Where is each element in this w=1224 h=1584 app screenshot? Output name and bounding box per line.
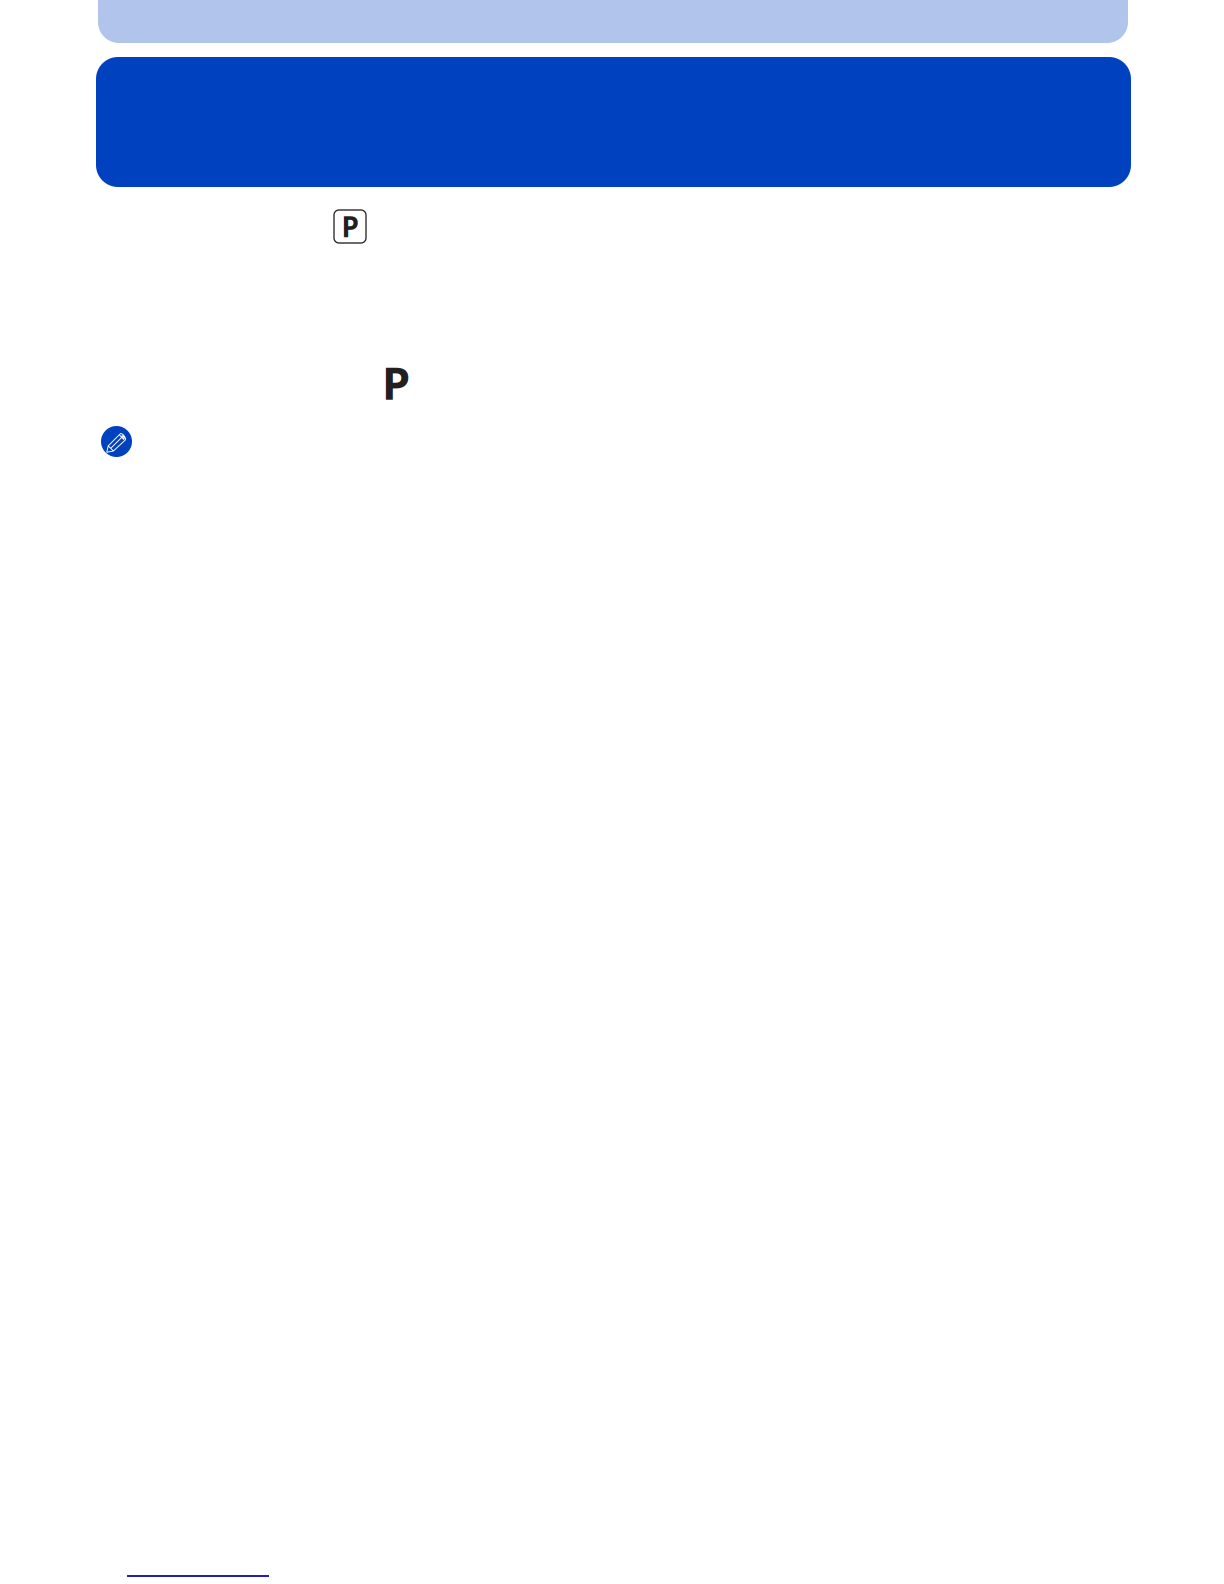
- staticText: P: [382, 352, 410, 412]
- button[interactable]: Note: [101, 426, 132, 457]
- staticText: P: [341, 208, 358, 245]
- button[interactable]: P: [334, 210, 366, 243]
